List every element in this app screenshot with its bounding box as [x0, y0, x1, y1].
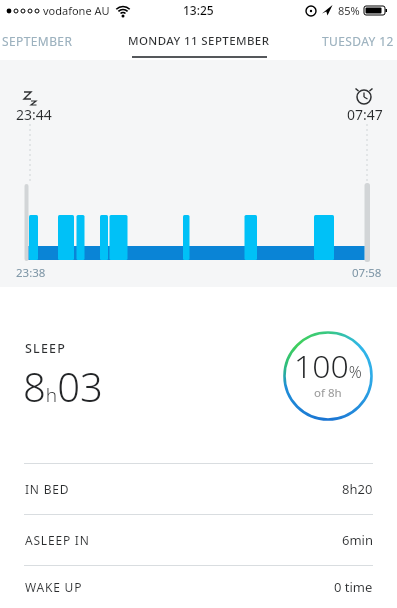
- button[interactable]: TUESDAY 12: [322, 33, 394, 49]
- staticText: WAKE UP: [25, 579, 83, 595]
- staticText: 23:44: [16, 105, 52, 124]
- staticText: 100%: [294, 344, 362, 388]
- staticText: 07:47: [347, 105, 383, 124]
- button[interactable]: IN BED: [25, 464, 373, 514]
- staticText: of 8h: [314, 385, 342, 401]
- staticText: 07:58: [352, 265, 382, 281]
- staticText: 13:25: [183, 2, 214, 18]
- staticText: SLEEP: [25, 340, 67, 357]
- staticText: 6min: [342, 531, 373, 549]
- staticText: vodafone AU: [43, 3, 110, 18]
- staticText: IN BED: [25, 481, 70, 497]
- staticText: 8h20: [342, 480, 373, 498]
- button[interactable]: MONDAY 11 SEPTEMBER: [128, 33, 270, 58]
- button[interactable]: SEPTEMBER: [2, 33, 73, 49]
- staticText: MONDAY 11 SEPTEMBER: [128, 33, 270, 49]
- button[interactable]: ASLEEP IN: [25, 515, 373, 565]
- staticText: 85%: [338, 3, 360, 18]
- staticText: 8h03: [23, 359, 103, 413]
- staticText: 23:38: [16, 265, 46, 281]
- staticText: 0 time: [334, 578, 373, 596]
- button[interactable]: WAKE UP: [25, 566, 373, 608]
- staticText: ASLEEP IN: [25, 532, 90, 548]
